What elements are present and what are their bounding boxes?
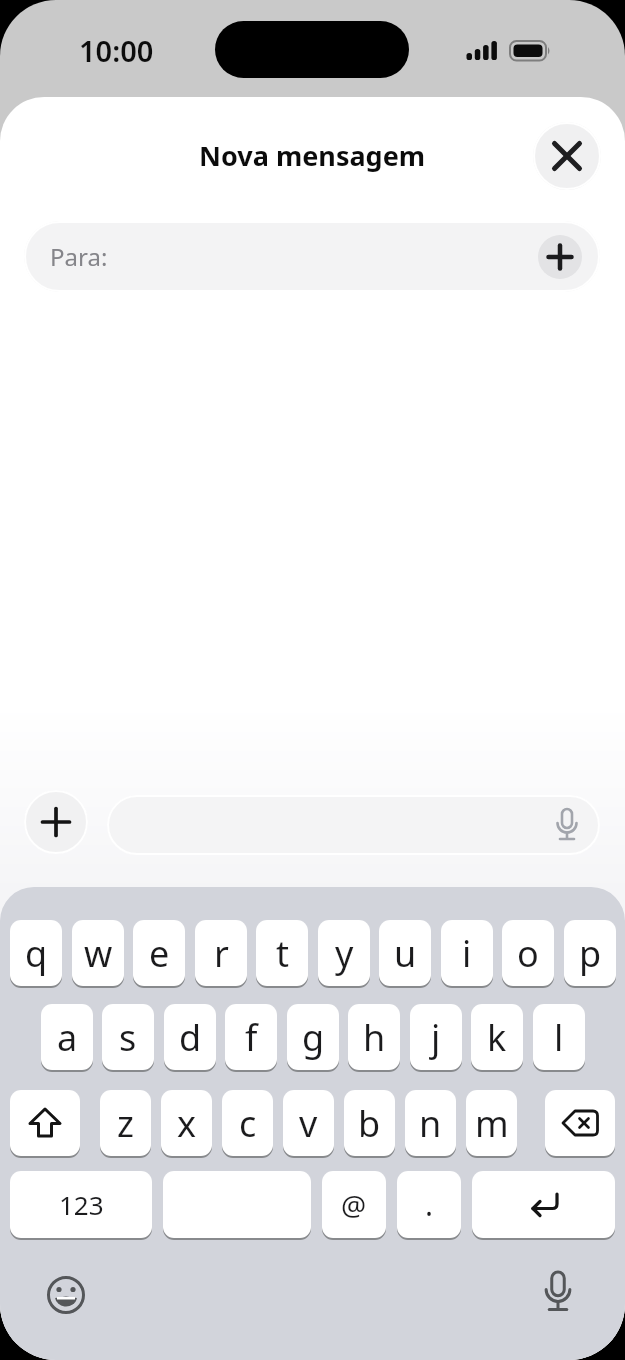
staticText: n	[419, 1099, 442, 1148]
staticText: r	[214, 929, 229, 978]
staticText: l	[554, 1013, 564, 1062]
staticText: x	[177, 1099, 197, 1148]
staticText: k	[487, 1013, 507, 1062]
staticText: o	[517, 929, 539, 978]
staticText: q	[25, 929, 48, 978]
staticText: f	[245, 1013, 258, 1062]
staticText: h	[363, 1013, 386, 1062]
staticText: m	[475, 1099, 509, 1148]
staticText: e	[149, 929, 170, 978]
staticText: b	[358, 1099, 381, 1148]
staticText: w	[84, 929, 113, 978]
staticText: j	[431, 1013, 441, 1062]
staticText: @	[341, 1186, 367, 1224]
staticText: c	[239, 1099, 257, 1148]
staticText: Para:	[50, 240, 108, 273]
staticText: v	[299, 1099, 318, 1148]
staticText: d	[179, 1013, 202, 1062]
staticText: p	[579, 929, 602, 978]
staticText: i	[462, 929, 472, 978]
staticText: 123	[59, 1187, 104, 1222]
staticText: y	[335, 929, 354, 978]
staticText: .	[425, 1184, 434, 1225]
staticText: g	[302, 1013, 325, 1062]
staticText: 10:00	[79, 31, 154, 70]
staticText: u	[394, 929, 417, 978]
staticText: z	[117, 1099, 134, 1148]
staticText: Nova mensagem	[199, 137, 426, 174]
staticText: a	[57, 1013, 78, 1062]
staticText: s	[119, 1013, 137, 1062]
staticText: t	[276, 929, 289, 978]
